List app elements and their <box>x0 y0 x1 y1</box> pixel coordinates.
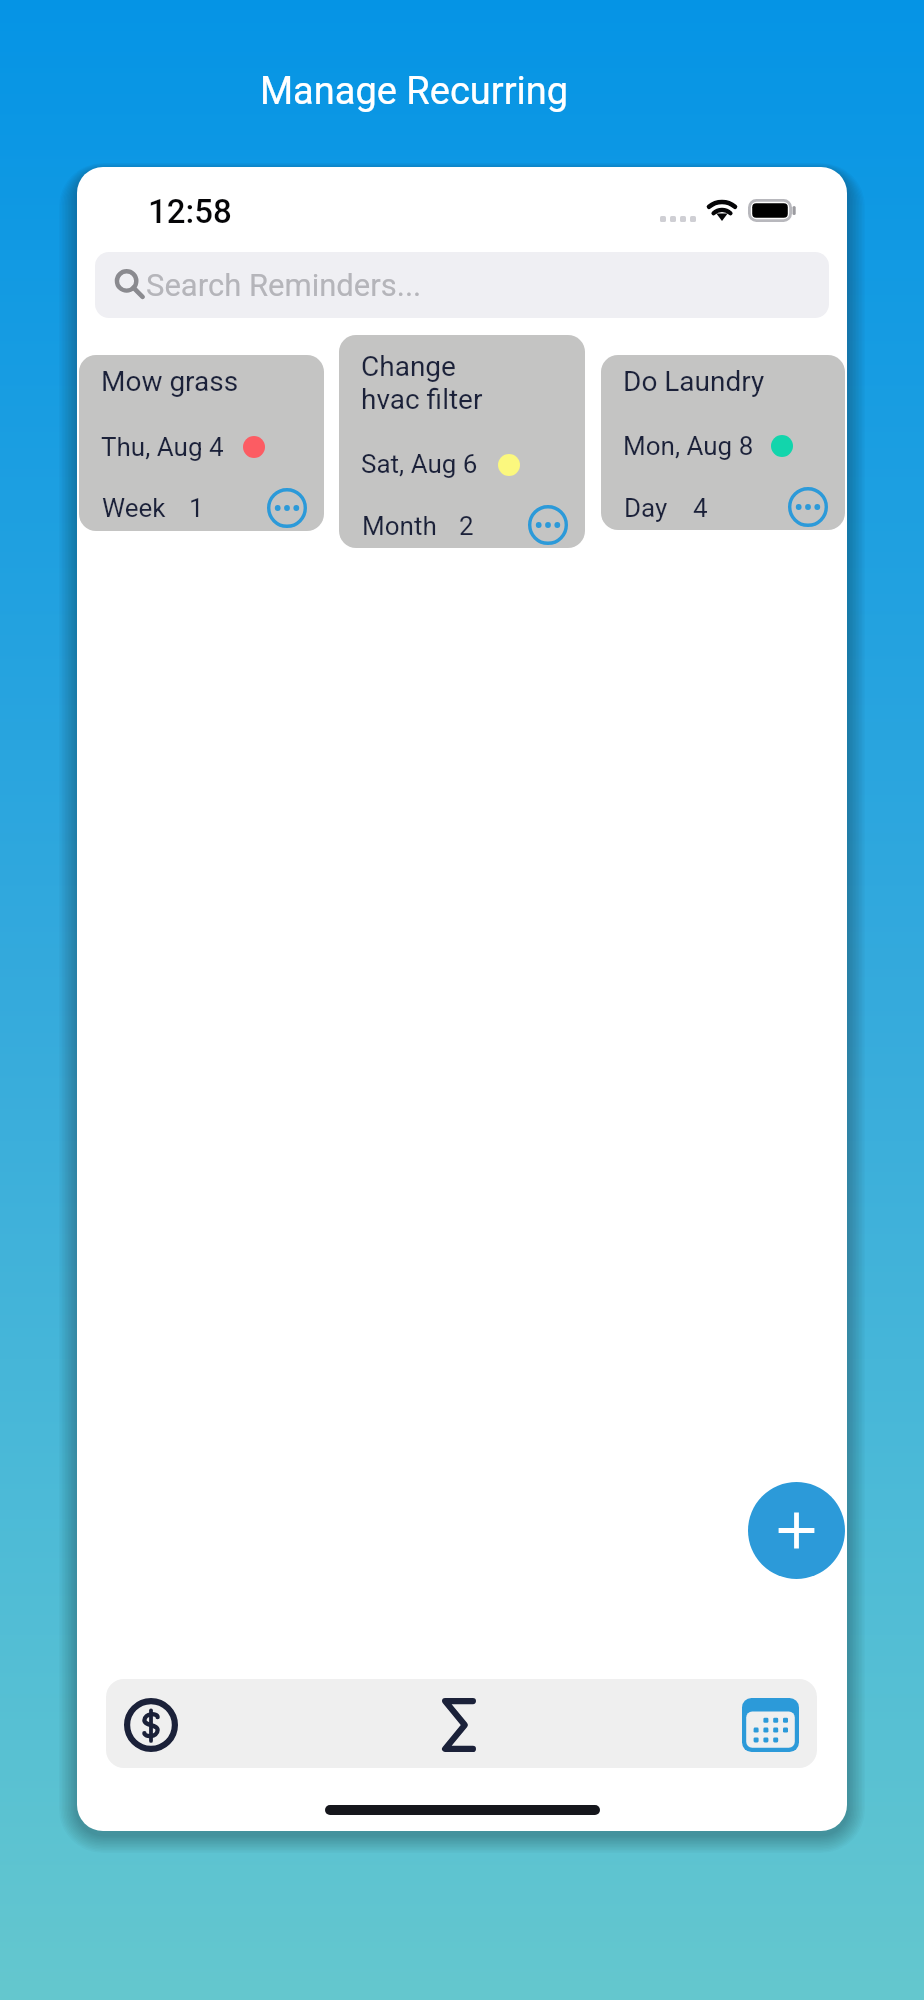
staticText: Do Laundry <box>623 365 765 398</box>
button[interactable]: Budget <box>106 1679 216 1768</box>
button[interactable]: Add reminder <box>748 1482 845 1579</box>
button[interactable]: More options <box>267 488 307 528</box>
button[interactable]: More options <box>528 505 568 545</box>
staticText: 2 <box>459 511 474 541</box>
button[interactable]: Mow grass <box>79 355 324 531</box>
button[interactable]: Change <box>339 335 585 548</box>
staticText: Mon, Aug 8 <box>623 431 754 461</box>
button[interactable]: Calendar <box>739 1679 817 1768</box>
staticText: hvac filter <box>361 383 483 416</box>
staticText: 1 <box>189 493 204 523</box>
staticText: Day <box>624 493 668 523</box>
button[interactable]: More options <box>788 487 828 527</box>
staticText: 12:58 <box>148 192 232 231</box>
button[interactable]: Totals <box>415 1679 535 1768</box>
staticText: Mow grass <box>101 365 239 398</box>
button[interactable]: Search Reminders... <box>95 252 829 318</box>
staticText: Week <box>102 493 166 523</box>
staticText: Change <box>361 350 456 383</box>
staticText: 4 <box>693 493 708 523</box>
staticText: Manage Recurring <box>0 69 828 114</box>
staticText: Month <box>362 511 437 541</box>
staticText: Search Reminders... <box>146 267 422 303</box>
button[interactable]: Do Laundry <box>601 355 845 530</box>
staticText: Sat, Aug 6 <box>361 449 478 479</box>
staticText: Thu, Aug 4 <box>101 432 224 462</box>
